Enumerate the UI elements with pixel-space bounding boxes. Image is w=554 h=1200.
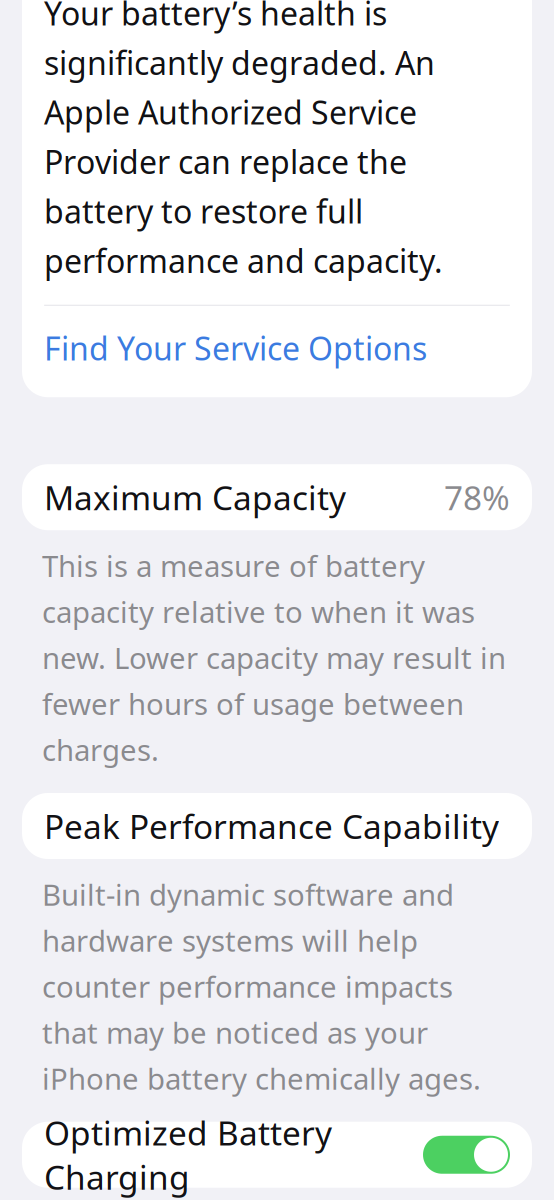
staticText: Your battery’s health is significantly d… — [44, 0, 443, 282]
button[interactable]: Peak Performance Capability — [22, 793, 532, 859]
button[interactable]: Optimized Battery Charging — [22, 1122, 532, 1188]
staticText: Find Your Service Options — [44, 327, 427, 369]
staticText: 78% — [444, 475, 510, 519]
button[interactable]: Find Your Service Options — [44, 327, 510, 369]
staticText: Maximum Capacity — [44, 475, 346, 519]
staticText: Peak Performance Capability — [44, 804, 499, 848]
button[interactable]: Maximum Capacity — [22, 464, 532, 530]
staticText: This is a measure of battery capacity re… — [42, 546, 506, 769]
staticText: Built-in dynamic software and hardware s… — [42, 875, 481, 1098]
staticText: Optimized Battery Charging — [44, 1110, 332, 1199]
